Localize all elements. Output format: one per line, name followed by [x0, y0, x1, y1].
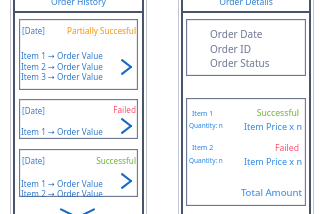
staticText: Failed	[19, 104, 136, 115]
staticText: Item Price x n	[186, 155, 302, 167]
other: Open order	[121, 59, 132, 75]
staticText: Item 1 → Order Value	[21, 50, 103, 61]
staticText: Failed	[186, 142, 299, 154]
button[interactable]: Order items	[186, 98, 306, 206]
staticText: Item 1	[192, 109, 214, 119]
staticText: Successful	[186, 107, 299, 119]
staticText: Order History	[15, 0, 142, 8]
staticText: Item 2 → Order Value	[21, 188, 103, 199]
other: Show more orders	[60, 209, 95, 214]
staticText: Quantity: n	[189, 156, 223, 165]
staticText: Item 3 → Order Value	[21, 71, 103, 82]
staticText: [Date]	[22, 25, 45, 36]
staticText: [Date]	[22, 155, 45, 166]
other: Open order	[121, 118, 132, 134]
other: Open order	[121, 173, 132, 189]
staticText: Item 2 → Order Value	[21, 61, 103, 72]
staticText: Order Details	[183, 0, 309, 8]
staticText: Quantity: n	[189, 121, 223, 130]
staticText: Item 1 → Order Value	[21, 126, 103, 137]
staticText: [Date]	[22, 105, 45, 116]
staticText: Item Price x n	[186, 120, 302, 132]
staticText: Item 1 → Order Value	[21, 178, 103, 189]
staticText: Order ID	[210, 42, 251, 56]
staticText: Order Status	[210, 56, 270, 70]
button[interactable]: Order summary	[186, 19, 306, 76]
staticText: Partially Succesful	[19, 25, 136, 36]
staticText: Order Date	[210, 27, 263, 41]
button[interactable]: Order, Failed	[19, 99, 138, 139]
button[interactable]: Order, Successful	[19, 149, 138, 197]
staticText: Successful	[19, 155, 136, 166]
staticText: Item 2	[192, 143, 214, 153]
button[interactable]: Order, Partially Succesful	[19, 19, 138, 90]
staticText: Total Amount	[186, 186, 302, 199]
